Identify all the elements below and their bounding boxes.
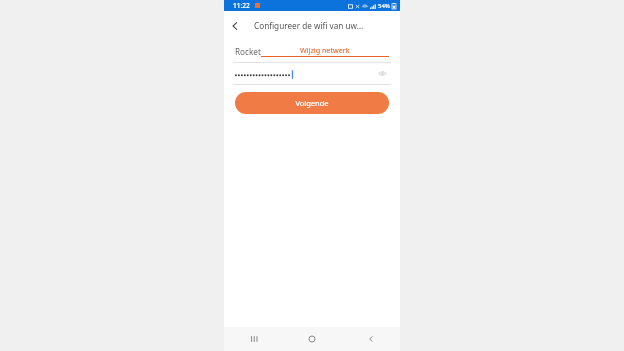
staticText: 11:22 [233, 1, 250, 10]
button[interactable]: Volgende [235, 92, 389, 114]
staticText: 54% [378, 2, 390, 10]
button[interactable]: Show password [376, 67, 389, 80]
button[interactable]: Home [282, 327, 341, 351]
staticText: Wijzig netwerk [300, 45, 350, 55]
button[interactable]: Wijzig netwerk [261, 45, 389, 57]
staticText: Rocket [235, 46, 261, 57]
button[interactable]: Back [341, 327, 400, 351]
button[interactable]: Back [224, 15, 246, 37]
staticText: Volgende [295, 98, 329, 108]
button[interactable]: Recent apps [224, 327, 282, 351]
staticText: Configureer de wifi van uw… [254, 20, 364, 31]
